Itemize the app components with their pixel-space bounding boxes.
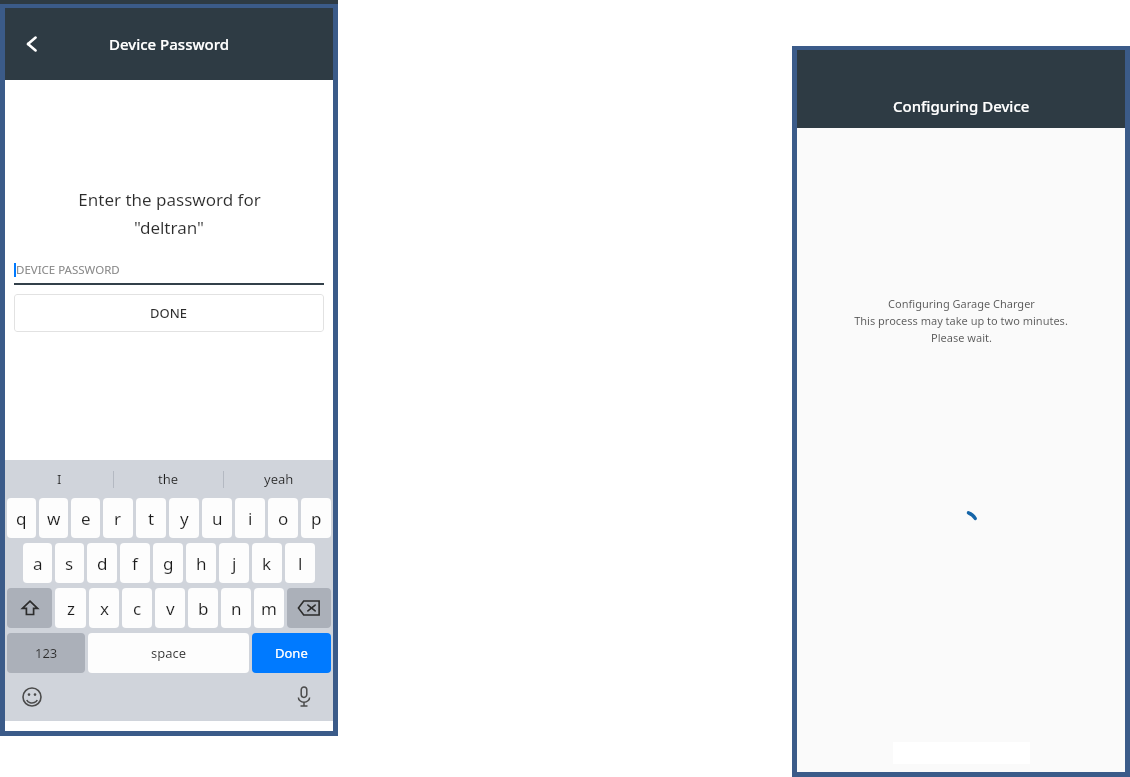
staticText: DEVICE PASSWORD [16,262,120,278]
button[interactable]: space [88,633,249,673]
button[interactable]: x [89,588,119,628]
staticText: I [57,470,62,488]
button[interactable]: a [23,543,52,583]
staticText: u [212,507,223,530]
staticText: b [198,597,209,620]
staticText: z [67,597,75,620]
staticText: h [196,552,207,575]
staticText: the [158,470,179,488]
button[interactable]: u [202,498,232,538]
staticText: Enter the password for [78,188,261,211]
button[interactable]: Back [11,23,53,65]
button[interactable]: Shift [7,588,52,628]
button[interactable]: Done [252,633,331,673]
button[interactable]: Emoji [17,682,47,712]
staticText: Please wait. [931,330,992,345]
button[interactable]: 123 [7,633,85,673]
staticText: DONE [150,304,188,322]
staticText: j [232,552,237,575]
button[interactable]: m [254,588,284,628]
staticText: Done [275,644,308,662]
button[interactable]: Voice input [289,682,319,712]
button[interactable]: f [120,543,150,583]
button[interactable]: Backspace [287,588,331,628]
staticText: w [47,507,61,530]
button[interactable]: r [103,498,133,538]
button[interactable]: p [301,498,331,538]
staticText: "deltran" [134,216,204,239]
button[interactable]: g [153,543,183,583]
staticText: o [278,507,289,530]
staticText: m [261,597,277,620]
staticText: Configuring Device [893,96,1030,116]
button[interactable]: y [169,498,199,538]
staticText: v [166,597,175,620]
button[interactable]: i [235,498,265,538]
button[interactable]: k [252,543,282,583]
button[interactable]: l [285,543,315,583]
button[interactable]: z [55,588,86,628]
button[interactable]: h [186,543,216,583]
button[interactable]: c [122,588,152,628]
button[interactable]: v [155,588,185,628]
button[interactable]: q [7,498,36,538]
button[interactable]: w [39,498,68,538]
button[interactable]: t [136,498,166,538]
staticText: g [163,552,174,575]
staticText: Device Password [109,34,230,54]
button[interactable]: s [55,543,84,583]
staticText: s [65,552,74,575]
staticText: k [262,552,272,575]
staticText: e [81,507,91,530]
button[interactable]: e [71,498,100,538]
button[interactable]: DONE [14,294,324,332]
staticText: y [180,507,189,530]
staticText: Configuring Garage Charger [888,296,1035,311]
button[interactable]: the [114,460,223,498]
staticText: l [298,552,303,575]
staticText: yeah [264,470,294,488]
staticText: c [133,597,142,620]
staticText: x [100,597,109,620]
button[interactable]: d [87,543,117,583]
button[interactable]: j [219,543,249,583]
button[interactable]: b [188,588,218,628]
staticText: f [132,552,138,575]
staticText: r [114,507,122,530]
button[interactable]: I [5,460,113,498]
staticText: d [97,552,108,575]
staticText: 123 [35,644,58,662]
staticText: t [148,507,155,530]
button[interactable]: o [268,498,298,538]
button[interactable]: DEVICE PASSWORD [14,257,324,283]
staticText: space [151,644,187,662]
button[interactable]: n [221,588,251,628]
staticText: a [33,552,43,575]
button[interactable]: yeah [224,460,333,498]
staticText: n [231,597,242,620]
staticText: p [311,507,322,530]
staticText: This process may take up to two minutes. [854,313,1068,328]
staticText: q [16,507,27,530]
staticText: i [248,507,253,530]
